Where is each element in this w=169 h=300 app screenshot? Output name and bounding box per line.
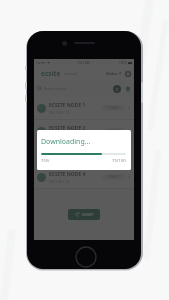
button[interactable]: Settings bbox=[123, 69, 132, 78]
staticText: RESET bbox=[82, 212, 94, 218]
button[interactable]: CONNECT bbox=[102, 128, 125, 134]
staticText: network bbox=[64, 71, 78, 76]
button[interactable]: CONNECT bbox=[102, 151, 125, 157]
button[interactable]: Location bbox=[124, 85, 131, 92]
staticText: ECSITE NODE 1 bbox=[49, 102, 86, 109]
staticText: ECSITE NODE 2 bbox=[49, 125, 86, 132]
button[interactable]: ECSITE NODE 3 bbox=[34, 143, 134, 165]
staticText: 192.168.1.11 bbox=[49, 110, 70, 115]
staticText: CONNECT bbox=[107, 106, 121, 110]
button[interactable]: Account bbox=[113, 85, 121, 93]
staticText: Carrier bbox=[36, 61, 46, 65]
button[interactable]: ECSITE NODE 4 bbox=[34, 166, 134, 188]
staticText: 75% bbox=[41, 158, 50, 164]
staticText: CONNECT bbox=[107, 175, 121, 179]
staticText: 192.168.1.14 bbox=[49, 179, 70, 184]
staticText: CONNECT bbox=[107, 129, 121, 133]
staticText: 9:41 AM bbox=[78, 61, 90, 65]
staticText: ECSITE NODE 4 bbox=[49, 171, 86, 178]
staticText: CONNECT bbox=[107, 152, 121, 156]
staticText: ECSITE NODE 3 bbox=[49, 148, 86, 155]
staticText: 75/100 bbox=[112, 158, 126, 164]
staticText: Downloading... bbox=[41, 137, 91, 147]
staticText: 100% bbox=[119, 61, 127, 65]
button[interactable]: ECSITE NODE 2 bbox=[34, 120, 134, 142]
button[interactable]: CONNECT bbox=[102, 105, 125, 111]
button[interactable]: ECSITE NODE 1 bbox=[34, 97, 134, 119]
button[interactable]: CONNECT bbox=[102, 174, 125, 180]
staticText: Search nodes bbox=[44, 86, 67, 91]
staticText: ecsite bbox=[41, 69, 61, 78]
staticText: E bbox=[116, 87, 119, 92]
staticText: Nodes: 7 bbox=[106, 71, 121, 76]
button[interactable]: RESET bbox=[68, 209, 100, 220]
